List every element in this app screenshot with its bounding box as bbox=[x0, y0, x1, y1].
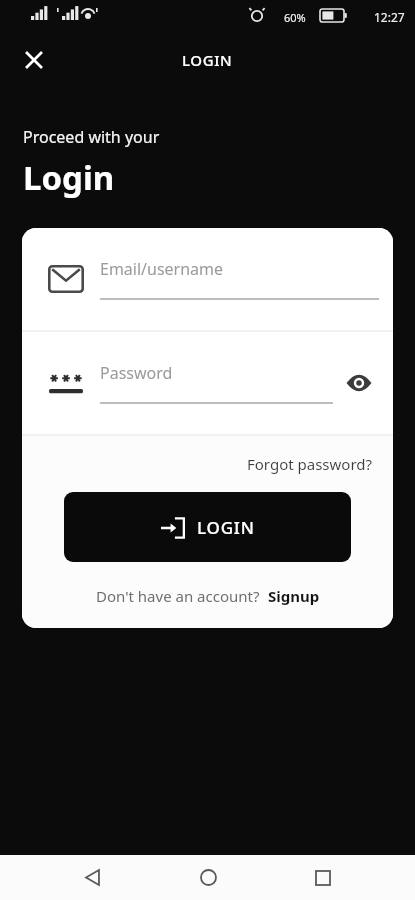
staticText: Proceed with your bbox=[23, 126, 160, 148]
staticText: Email/username bbox=[100, 258, 224, 280]
staticText: Password bbox=[100, 362, 173, 384]
button[interactable]: Password bbox=[22, 332, 393, 434]
staticText: LOGIN bbox=[182, 50, 233, 70]
staticText: Login bbox=[23, 155, 115, 200]
staticText: 12:27 bbox=[374, 9, 405, 25]
staticText: Don't have an account? bbox=[96, 586, 260, 606]
button[interactable]: Email/username bbox=[22, 228, 393, 330]
staticText: LOGIN bbox=[197, 516, 255, 539]
staticText: 60% bbox=[284, 10, 306, 25]
button[interactable]: Forgot password? bbox=[243, 450, 377, 478]
button[interactable]: Back bbox=[68, 855, 116, 900]
button[interactable]: Don't have an account? bbox=[90, 584, 326, 608]
staticText: Signup bbox=[268, 586, 320, 606]
button[interactable]: Recent apps bbox=[299, 855, 347, 900]
button[interactable]: Close bbox=[12, 38, 56, 82]
button[interactable]: Home bbox=[184, 855, 232, 900]
button[interactable]: LOGIN bbox=[64, 492, 351, 562]
button[interactable]: Show password bbox=[339, 363, 379, 403]
staticText: Forgot password? bbox=[247, 454, 373, 474]
